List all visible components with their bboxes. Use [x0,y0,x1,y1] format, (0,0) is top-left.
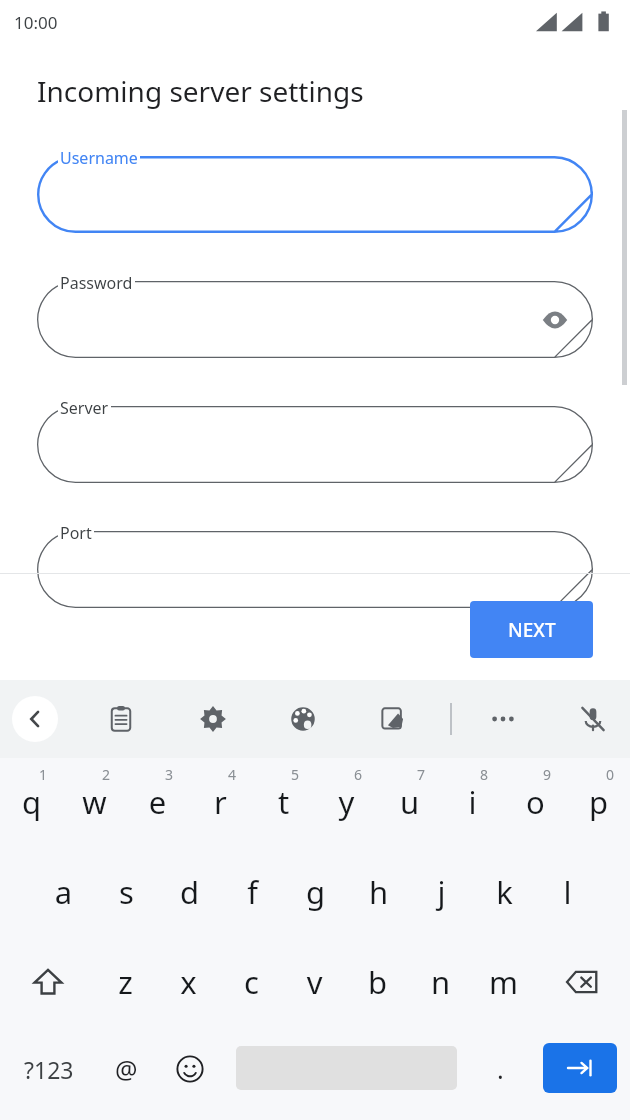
button[interactable]: y [315,772,378,832]
staticText: u [378,781,441,823]
staticText: 6 [354,765,363,784]
button[interactable]: Show password [537,302,573,338]
button[interactable]: d [158,862,221,922]
button[interactable]: NEXT [470,601,593,658]
staticText: 4 [228,765,237,784]
button[interactable]: j [410,862,473,922]
button[interactable]: z [94,952,157,1012]
staticText: r [189,781,252,823]
button[interactable]: Password [37,281,593,358]
button[interactable]: v [283,952,346,1012]
button[interactable]: Clipboard [98,696,144,742]
staticText: Username [60,147,138,169]
button[interactable]: i [441,772,504,832]
staticText: 0 [606,765,615,784]
staticText: v [283,961,346,1003]
staticText: 8 [480,765,489,784]
button[interactable]: Port [37,531,593,608]
button[interactable]: Enter [543,1043,617,1093]
staticText: f [221,871,284,913]
button[interactable]: Username [37,156,593,233]
staticText: ?123 [24,1054,74,1085]
staticText: Server [60,397,109,419]
button[interactable]: @ [96,1040,156,1098]
button[interactable]: b [346,952,409,1012]
button[interactable]: u [378,772,441,832]
button[interactable]: n [409,952,472,1012]
staticText: t [252,781,315,823]
staticText: s [95,871,158,913]
button[interactable]: ?123 [4,1040,94,1098]
staticText: e [126,781,189,823]
staticText: p [567,781,630,823]
button[interactable]: Backspace [542,952,622,1012]
button[interactable]: a [32,862,95,922]
button[interactable]: Server [37,406,593,483]
staticText: n [409,961,472,1003]
staticText: Incoming server settings [37,72,364,110]
staticText: i [441,781,504,823]
staticText: . [497,1052,504,1086]
button[interactable]: e [126,772,189,832]
staticText: 7 [417,765,426,784]
button[interactable]: m [472,952,535,1012]
staticText: b [346,961,409,1003]
staticText: NEXT [508,617,556,643]
staticText: o [504,781,567,823]
staticText: a [32,871,95,913]
staticText: 10:00 [14,11,58,34]
button[interactable]: l [536,862,599,922]
button[interactable]: Settings [190,696,236,742]
staticText: x [157,961,220,1003]
button[interactable]: g [284,862,347,922]
button[interactable]: p [567,772,630,832]
staticText: l [536,871,599,913]
button[interactable]: f [221,862,284,922]
button[interactable]: Theme [280,696,326,742]
button[interactable]: k [473,862,536,922]
button[interactable]: Emoji [160,1040,220,1098]
staticText: y [315,781,378,823]
button[interactable]: s [95,862,158,922]
button[interactable]: c [220,952,283,1012]
staticText: k [473,871,536,913]
staticText: g [284,871,347,913]
button[interactable]: q [0,772,63,832]
button[interactable]: h [347,862,410,922]
button[interactable]: . [470,1040,530,1098]
staticText: 3 [165,765,174,784]
staticText: c [220,961,283,1003]
staticText: d [158,871,221,913]
staticText: w [63,781,126,823]
staticText: 1 [39,765,48,784]
staticText: 9 [543,765,552,784]
button[interactable]: r [189,772,252,832]
staticText: Password [60,272,133,294]
staticText: j [410,871,473,913]
button[interactable]: More options [480,696,526,742]
button[interactable]: Handwriting [370,696,416,742]
button[interactable]: Shift [8,952,88,1012]
staticText: m [472,961,535,1003]
staticText: 5 [291,765,300,784]
button[interactable]: t [252,772,315,832]
staticText: Port [60,522,92,544]
button[interactable]: x [157,952,220,1012]
button[interactable]: Back [12,696,58,742]
staticText: @ [115,1052,138,1086]
staticText: 2 [102,765,111,784]
button[interactable]: Voice input off [570,696,616,742]
staticText: z [94,961,157,1003]
staticText: h [347,871,410,913]
button[interactable]: w [63,772,126,832]
button[interactable]: o [504,772,567,832]
staticText: q [0,781,63,823]
